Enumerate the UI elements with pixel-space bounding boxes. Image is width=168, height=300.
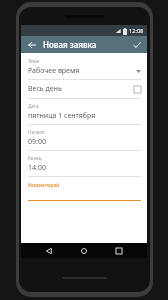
staticText: Начало [28,129,45,135]
button[interactable]: Комментарий [21,177,147,201]
staticText: Весь день [28,84,62,94]
button[interactable]: Назад [42,244,56,258]
button[interactable]: Последние приложения [112,244,126,258]
staticText: 14:00 [28,163,46,173]
staticText: Дата [28,103,39,109]
button[interactable]: Весь день [21,80,147,98]
button[interactable]: Домой [77,244,91,258]
staticText: 09:00 [28,137,46,147]
staticText: Тема [28,58,39,64]
staticText: Рабочее время [28,66,80,76]
button[interactable]: Назад [25,38,38,51]
button[interactable]: Дата [21,99,147,124]
button[interactable]: Конец [21,151,147,176]
button[interactable]: Сохранить [130,38,143,51]
staticText: пятница 1 сентября [28,111,96,121]
staticText: Комментарий [28,182,60,188]
button[interactable]: Тема [21,53,147,79]
staticText: 12:08 [129,27,144,35]
staticText: Новая заявка [43,39,97,50]
staticText: Конец [28,155,42,161]
button[interactable]: Начало [21,125,147,150]
